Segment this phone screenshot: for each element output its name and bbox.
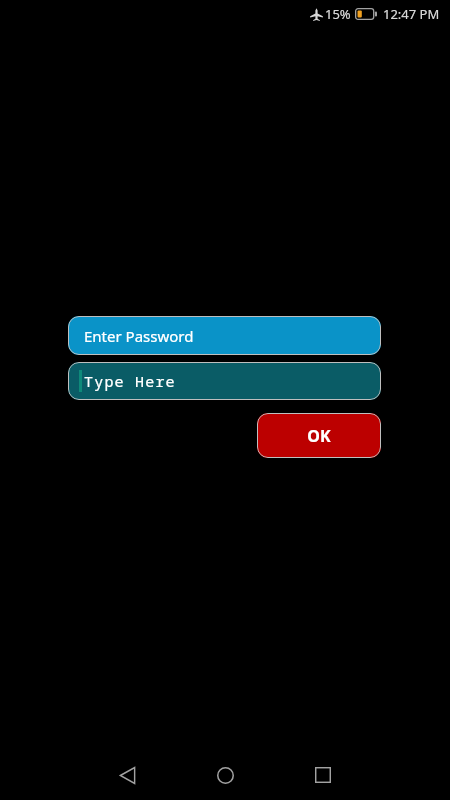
button[interactable]: Type Here (68, 362, 381, 400)
button[interactable]: Enter Password (68, 316, 381, 355)
staticText: 15% (325, 5, 351, 23)
staticText: Enter Password (84, 326, 194, 346)
button[interactable]: Back (105, 753, 149, 797)
button[interactable]: Home (203, 753, 247, 797)
staticText: OK (307, 425, 331, 447)
button[interactable]: OK (257, 413, 381, 458)
staticText: Type Here (84, 371, 176, 391)
button[interactable]: Recent apps (301, 753, 345, 797)
staticText: 12:47 PM (383, 5, 440, 23)
